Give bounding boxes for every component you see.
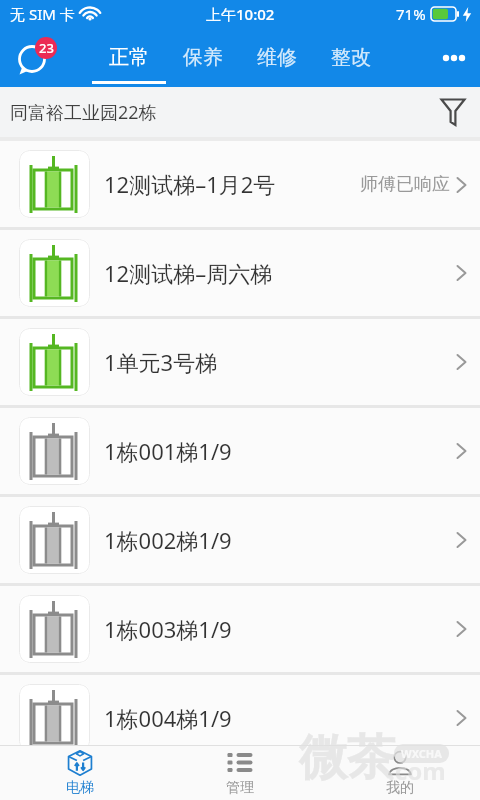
staticText: 微茶 [299, 728, 395, 788]
button[interactable] [436, 95, 470, 129]
button[interactable]: 1栋002梯1/9 [0, 497, 480, 583]
button[interactable] [436, 40, 472, 76]
staticText: 23 [39, 39, 54, 57]
staticText: 保养 [183, 45, 223, 70]
staticText: 12测试梯–1月2号 [104, 169, 276, 199]
button[interactable]: 正常 [92, 28, 166, 87]
staticText: 维修 [257, 45, 297, 70]
staticText: 正常 [109, 45, 149, 70]
button[interactable]: 12测试梯–周六梯 [0, 230, 480, 316]
button[interactable]: 1栋004梯1/9 [0, 675, 480, 761]
staticText: WXCHA [401, 746, 442, 761]
staticText: .com [388, 754, 446, 787]
button[interactable]: 1栋001梯1/9 [0, 408, 480, 494]
button[interactable]: 我的 [320, 746, 480, 800]
button[interactable]: 管理 [160, 746, 320, 800]
button[interactable]: 电梯 [0, 746, 160, 800]
button[interactable]: 保养 [166, 28, 240, 87]
staticText: 管理 [226, 779, 254, 797]
staticText: 上午10:02 [206, 4, 275, 24]
staticText: 我的 [386, 779, 414, 797]
staticText: 无 SIM 卡 [10, 4, 75, 24]
staticText: 1栋003梯1/9 [104, 614, 232, 644]
button[interactable]: 23 [5, 28, 59, 82]
staticText: 1栋001梯1/9 [104, 436, 232, 466]
button[interactable]: 12测试梯–1月2号 [0, 141, 480, 227]
staticText: 同富裕工业园22栋 [10, 100, 157, 125]
button[interactable]: 1单元3号梯 [0, 319, 480, 405]
staticText: 71% [396, 4, 426, 24]
staticText: 1栋002梯1/9 [104, 525, 232, 555]
staticText: 1栋004梯1/9 [104, 703, 232, 733]
staticText: 12测试梯–周六梯 [104, 258, 273, 288]
staticText: 电梯 [66, 779, 94, 797]
button[interactable]: 维修 [240, 28, 314, 87]
button[interactable]: 1栋003梯1/9 [0, 586, 480, 672]
staticText: 1单元3号梯 [104, 347, 218, 377]
button[interactable]: 整改 [314, 28, 388, 87]
staticText: 整改 [331, 45, 371, 70]
staticText: 师傅已响应 [360, 173, 450, 196]
